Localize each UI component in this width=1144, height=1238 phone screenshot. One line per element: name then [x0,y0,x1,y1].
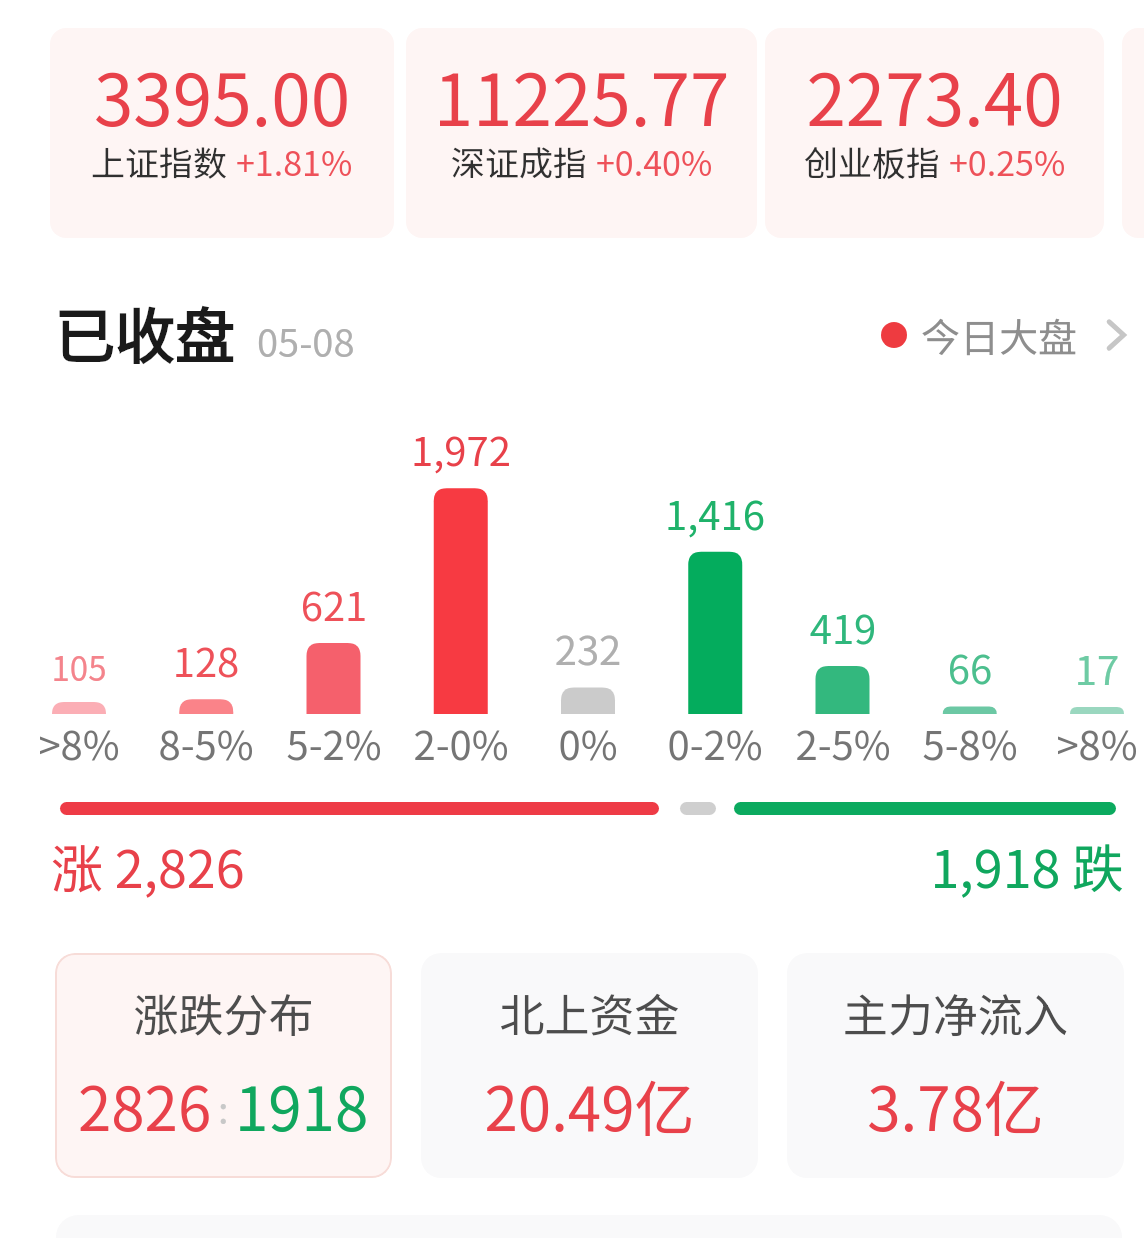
staticText: 17 [1017,639,1144,697]
staticText: 涨 2,826 [51,828,245,903]
staticText: 3.78亿 [787,1061,1124,1148]
button[interactable]: 主力净流入 [787,953,1124,1178]
staticText: 0% [508,714,668,772]
staticText: 66 [890,638,1050,696]
staticText: 05-08 [257,313,355,368]
staticText: +0.25% [949,137,1066,186]
staticText: 3395.00 [50,44,394,147]
staticText: 11225.77 [406,44,757,147]
staticText: +0.40% [596,137,713,186]
staticText: 2-5% [763,714,923,772]
staticText: 已收盘 [55,288,235,368]
staticText: 0-2% [635,714,795,772]
staticText: 1918 [235,1061,369,1148]
staticText: 今日大盘 [921,307,1078,363]
staticText: 419 [763,598,923,656]
staticText: 1,918 跌 [800,828,1124,903]
staticText: 128 [126,631,286,689]
button[interactable]: 涨跌分布 [55,953,392,1178]
staticText: 涨跌分布 [55,980,392,1045]
staticText: 创业板指 [804,137,940,186]
button[interactable]: 11225.77 [406,28,757,238]
staticText: 621 [254,575,414,633]
staticText: >8% [0,714,159,772]
staticText: 1,416 [635,484,795,542]
staticText: 232 [508,619,668,677]
staticText: 8-5% [126,714,286,772]
staticText: 1,972 [381,420,541,478]
staticText: 2-0% [381,714,541,772]
staticText: 5-2% [254,714,414,772]
staticText: 5-8% [890,714,1050,772]
staticText: 北上资金 [421,980,758,1045]
staticText: 105 [0,643,159,691]
staticText: : [218,1080,229,1135]
staticText: 深证成指 [451,137,587,186]
button[interactable]: 今日大盘 [881,295,1132,375]
staticText: 上证指数 [91,137,227,186]
staticText: 2826 [78,1061,212,1148]
staticText: 20.49亿 [421,1061,758,1148]
button[interactable]: 3395.00 [50,28,394,238]
staticText: 主力净流入 [787,980,1124,1045]
button[interactable]: 北上资金 [421,953,758,1178]
staticText: 2273.40 [765,44,1104,147]
staticText: +1.81% [236,137,353,186]
staticText: >8% [1017,714,1144,772]
button[interactable]: 2273.40 [765,28,1104,238]
